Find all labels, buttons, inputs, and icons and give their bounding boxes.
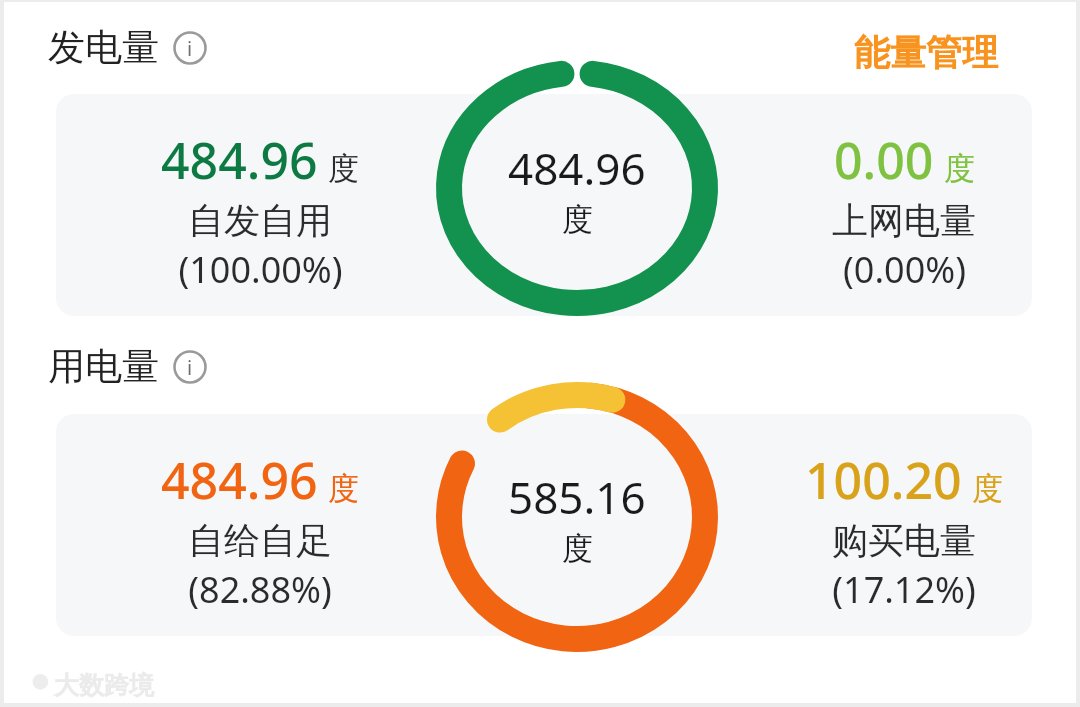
button[interactable]: 能量管理	[852, 28, 1000, 77]
staticText: 度	[562, 200, 593, 239]
button[interactable]: 484.96	[100, 126, 420, 294]
button[interactable]: 0.00	[744, 126, 1064, 294]
staticText: 484.96	[161, 446, 318, 514]
staticText: 585.16	[508, 467, 646, 527]
other: 信息	[173, 350, 207, 384]
staticText: i	[187, 354, 193, 381]
staticText: 自发自用	[188, 198, 332, 243]
staticText: 度	[328, 149, 359, 188]
staticText: 度	[944, 149, 975, 188]
staticText: 100.20	[805, 446, 962, 514]
staticText: 上网电量	[832, 198, 976, 243]
staticText: i	[187, 35, 193, 62]
staticText: 发电量	[48, 24, 159, 71]
staticText: (82.88%)	[188, 565, 332, 614]
button[interactable]: 用电量 585.16 度	[436, 382, 718, 652]
staticText: 度	[562, 529, 593, 568]
staticText: (17.12%)	[832, 565, 976, 614]
other: 信息	[173, 31, 207, 65]
staticText: 购买电量	[832, 518, 976, 563]
button[interactable]: 100.20	[744, 446, 1064, 614]
staticText: 484.96	[161, 126, 318, 194]
staticText: (100.00%)	[178, 245, 343, 294]
button[interactable]: 用电量	[48, 343, 207, 390]
staticText: (0.00%)	[843, 245, 966, 294]
staticText: 0.00	[834, 126, 934, 194]
button[interactable]: 484.96	[100, 446, 420, 614]
staticText: 自给自足	[188, 518, 332, 563]
staticText: 度	[972, 469, 1003, 508]
staticText: 用电量	[48, 343, 159, 390]
staticText: 484.96	[508, 138, 646, 198]
button[interactable]: 发电量 484.96 度	[436, 60, 718, 316]
staticText: 大数跨境	[54, 670, 154, 701]
staticText: 能量管理	[854, 30, 998, 75]
staticText: 度	[328, 469, 359, 508]
button[interactable]: 发电量	[48, 24, 207, 71]
